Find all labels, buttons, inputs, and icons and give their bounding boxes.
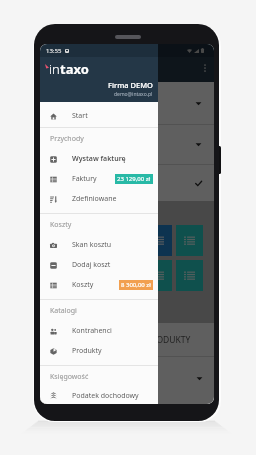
button[interactable]: Koszty	[40, 275, 158, 295]
staticText: Podatek dochodowy	[72, 391, 139, 401]
button[interactable]: Produkty	[40, 341, 158, 361]
staticText: 8 300,00 zł	[121, 281, 151, 289]
staticText: Kontrahenci	[72, 326, 112, 336]
button[interactable]	[145, 260, 172, 291]
button[interactable]: Faktury	[40, 169, 158, 189]
staticText: Faktury	[72, 174, 97, 184]
staticText: Zdefiniowane	[72, 194, 117, 204]
button[interactable]: Start	[40, 106, 158, 126]
staticText: 13:55	[46, 47, 62, 55]
button[interactable]	[83, 260, 110, 291]
button[interactable]	[83, 225, 110, 256]
staticText: Koszty	[72, 280, 94, 290]
button[interactable]: Skan kosztu	[40, 235, 158, 255]
staticText: taxo	[60, 60, 89, 78]
button[interactable]	[51, 260, 79, 291]
button[interactable]: Kontrahenci	[40, 321, 158, 341]
staticText: Koszty	[50, 220, 72, 230]
staticText: Katalogi	[50, 306, 77, 316]
button[interactable]	[51, 225, 79, 256]
staticText: Start	[72, 111, 88, 121]
staticText: Skan kosztu	[72, 240, 112, 250]
staticText: PRODUKTY	[146, 334, 191, 346]
button[interactable]: Wystaw fakturę	[40, 149, 158, 169]
button[interactable]	[40, 165, 214, 201]
staticText: Wystaw fakturę	[72, 154, 126, 164]
button[interactable]: Zdefiniowane	[40, 189, 158, 209]
staticText: Firma DEMO	[108, 80, 153, 90]
button[interactable]	[176, 225, 203, 256]
staticText: Księgowość	[50, 372, 89, 382]
staticText: demo@intaxo.pl	[114, 91, 153, 98]
button[interactable]	[145, 225, 172, 256]
staticText: in	[49, 60, 60, 78]
staticText: Dodaj koszt	[72, 260, 111, 270]
button[interactable]: More options	[198, 61, 212, 75]
button[interactable]: Dodaj koszt	[40, 255, 158, 275]
staticText: Produkty	[72, 346, 102, 356]
button[interactable]	[176, 260, 203, 291]
staticText: Przychody	[50, 134, 84, 144]
button[interactable]: Podatek dochodowy	[40, 387, 158, 404]
staticText: 23 129,00 zł	[117, 175, 151, 183]
button[interactable]	[40, 82, 214, 124]
button[interactable]	[114, 260, 141, 291]
button[interactable]	[40, 125, 214, 164]
